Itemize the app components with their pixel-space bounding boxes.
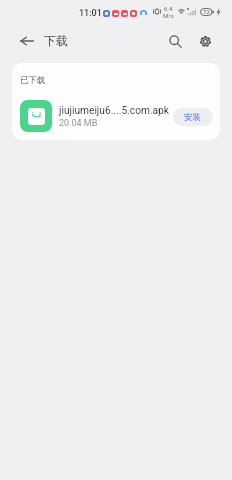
staticText: 20.04 MB	[59, 118, 98, 129]
button[interactable]: Back	[16, 30, 38, 52]
button[interactable]: 安装	[173, 108, 213, 126]
button[interactable]: Search	[164, 30, 186, 52]
staticText: 下载	[44, 33, 68, 48]
staticText: jiujiumeiju6....5.com.apk	[59, 105, 169, 117]
staticText: 6.4	[164, 5, 173, 12]
staticText: 已下载	[20, 75, 46, 86]
staticText: 安装	[184, 112, 202, 123]
staticText: 72	[203, 8, 210, 16]
button[interactable]: Settings	[194, 30, 216, 52]
button[interactable]: jiujiumeiju6....5.com.apk	[12, 94, 220, 134]
staticText: M/s	[163, 12, 174, 18]
staticText: 11:01	[79, 8, 102, 19]
